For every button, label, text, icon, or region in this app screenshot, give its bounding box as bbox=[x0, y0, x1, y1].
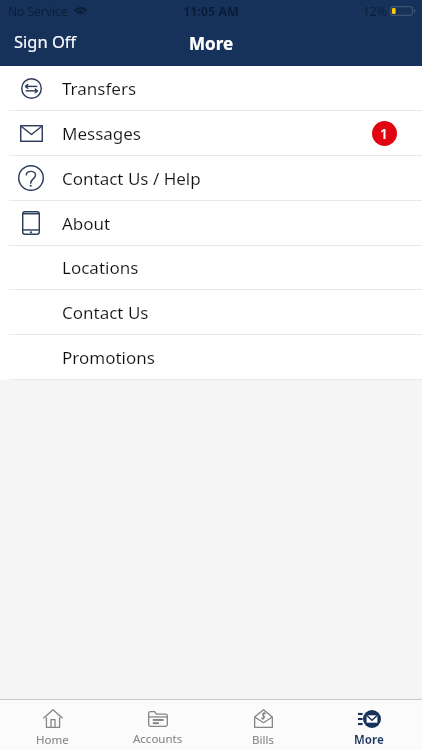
button[interactable]: Sign Off bbox=[0, 24, 89, 58]
staticText: More bbox=[354, 732, 384, 748]
staticText: Sign Off bbox=[14, 30, 77, 52]
button[interactable]: Contact Us bbox=[0, 290, 422, 334]
button[interactable]: Home bbox=[0, 702, 105, 748]
button[interactable]: Messages bbox=[0, 111, 422, 155]
button[interactable]: Bills bbox=[210, 702, 316, 748]
staticText: Contact Us bbox=[62, 301, 149, 324]
staticText: Messages bbox=[62, 122, 142, 145]
button[interactable]: Accounts bbox=[105, 704, 210, 747]
staticText: Home bbox=[36, 732, 69, 748]
staticText: Bills bbox=[252, 732, 274, 748]
staticText: Contact Us / Help bbox=[62, 167, 201, 190]
staticText: Transfers bbox=[62, 77, 137, 100]
button[interactable]: Locations bbox=[0, 246, 422, 289]
staticText: 11:05 AM bbox=[183, 3, 239, 20]
staticText: Promotions bbox=[62, 346, 155, 369]
button[interactable]: Promotions bbox=[0, 335, 422, 379]
button[interactable]: Transfers bbox=[0, 66, 422, 110]
staticText: More bbox=[189, 32, 234, 55]
staticText: 1 bbox=[380, 124, 389, 143]
button[interactable]: About bbox=[0, 201, 422, 245]
staticText: No Service bbox=[8, 3, 68, 19]
button[interactable]: Contact Us / Help bbox=[0, 156, 422, 200]
staticText: 12% bbox=[363, 3, 387, 19]
staticText: Accounts bbox=[133, 731, 183, 747]
button[interactable]: More bbox=[316, 703, 422, 748]
staticText: About bbox=[62, 212, 111, 235]
staticText: Locations bbox=[62, 256, 139, 279]
